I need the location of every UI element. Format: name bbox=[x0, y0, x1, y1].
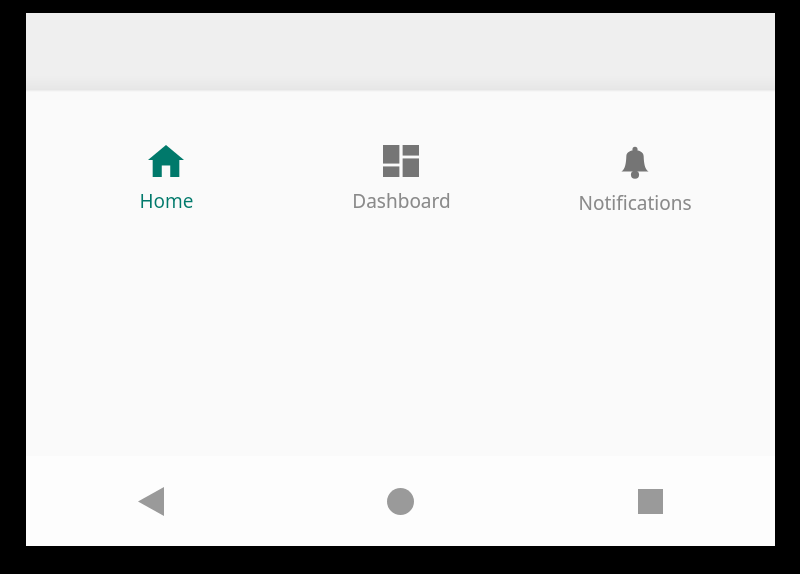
button[interactable]: Notifications bbox=[540, 141, 730, 220]
staticText: Notifications bbox=[578, 190, 692, 216]
button[interactable]: Dashboard bbox=[306, 141, 496, 218]
button[interactable]: Home bbox=[71, 141, 261, 218]
button[interactable]: Home bbox=[275, 456, 525, 546]
staticText: Dashboard bbox=[352, 188, 451, 214]
staticText: Home bbox=[139, 188, 194, 214]
button[interactable]: Back bbox=[26, 456, 275, 546]
button[interactable]: Recent apps bbox=[525, 456, 775, 546]
